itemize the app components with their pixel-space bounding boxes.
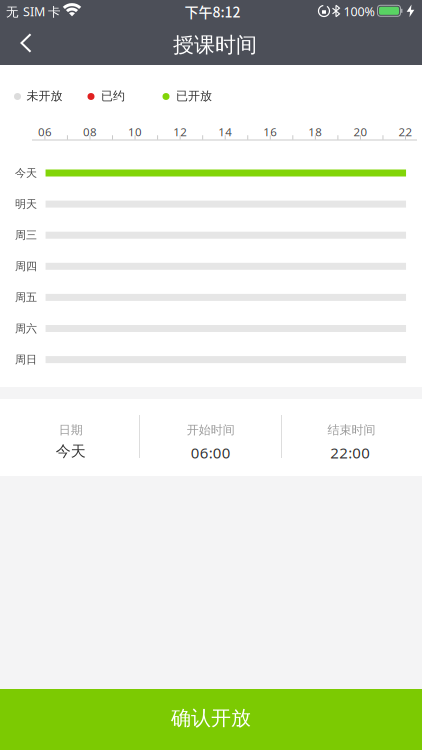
staticText: 20 xyxy=(353,124,367,140)
staticText: 周六 xyxy=(15,322,37,335)
staticText: 确认开放 xyxy=(171,705,251,731)
staticText: 授课时间 xyxy=(173,32,257,58)
staticText: 日期 xyxy=(59,422,83,437)
staticText: 14 xyxy=(218,124,232,140)
staticText: 今天 xyxy=(15,166,37,180)
staticText: 100% xyxy=(343,3,374,20)
staticText: 22 xyxy=(398,124,412,140)
staticText: 明天 xyxy=(15,197,37,211)
staticText: 下午8:12 xyxy=(184,1,240,22)
staticText: 18 xyxy=(308,124,322,140)
staticText: 22:00 xyxy=(330,442,370,463)
staticText: 10 xyxy=(128,124,142,140)
staticText: 已开放 xyxy=(176,88,212,103)
staticText: 16 xyxy=(263,124,277,140)
staticText: 开始时间 xyxy=(187,422,235,437)
staticText: 结束时间 xyxy=(328,422,376,437)
button[interactable]: 确认开放 xyxy=(0,689,422,750)
staticText: 周日 xyxy=(15,353,37,367)
staticText: 今天 xyxy=(56,442,86,461)
staticText: 06:00 xyxy=(191,442,231,463)
staticText: 12 xyxy=(173,124,187,140)
staticText: 已约 xyxy=(101,88,125,103)
staticText: 周五 xyxy=(15,290,37,304)
staticText: 08 xyxy=(83,124,97,140)
staticText: 无 SIM 卡 xyxy=(6,3,61,20)
staticText: 周三 xyxy=(15,228,37,242)
button[interactable]: Back xyxy=(4,21,48,65)
staticText: 周四 xyxy=(15,259,37,273)
staticText: 06 xyxy=(38,124,52,140)
staticText: 未开放 xyxy=(26,88,62,103)
